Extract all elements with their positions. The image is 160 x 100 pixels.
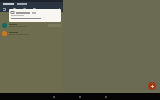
button[interactable] [9, 9, 61, 22]
button[interactable] [0, 22, 63, 29]
button[interactable]: Home [76, 93, 83, 100]
button[interactable]: Compose [148, 82, 156, 90]
button[interactable]: Menu [2, 7, 6, 11]
button[interactable]: Bookmark [12, 7, 16, 11]
button[interactable]: Recents [102, 93, 109, 100]
button[interactable]: Back [50, 93, 57, 100]
button[interactable] [0, 30, 63, 37]
button[interactable]: Labels [32, 7, 36, 11]
button[interactable]: More [57, 7, 61, 11]
button[interactable]: Settings [22, 7, 26, 11]
